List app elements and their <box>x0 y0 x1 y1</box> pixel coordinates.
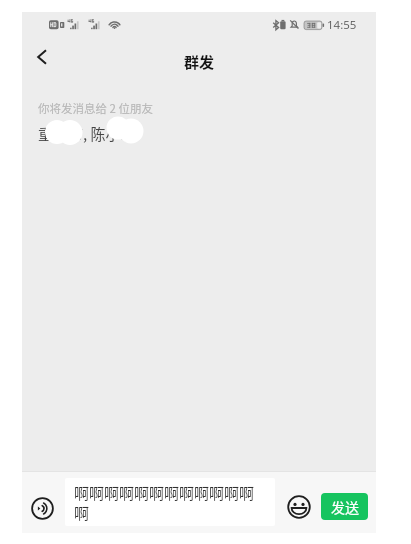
staticText: 14:55 <box>327 17 357 33</box>
staticText: 啊啊啊啊啊啊啊啊啊啊啊啊啊 <box>74 482 261 523</box>
button[interactable]: 发送 <box>321 493 368 520</box>
button[interactable]: Voice input <box>24 490 60 526</box>
button[interactable]: Emoji <box>281 489 317 525</box>
staticText: 发送 <box>331 497 359 517</box>
staticText: 群发 <box>22 51 376 73</box>
staticText: 你将发消息给 2 位朋友 <box>38 100 154 117</box>
button[interactable]: 啊啊啊啊啊啊啊啊啊啊啊啊啊 <box>65 478 275 526</box>
staticText: 重阳节, 陈小明 <box>38 123 136 145</box>
button[interactable]: Back <box>22 36 62 76</box>
